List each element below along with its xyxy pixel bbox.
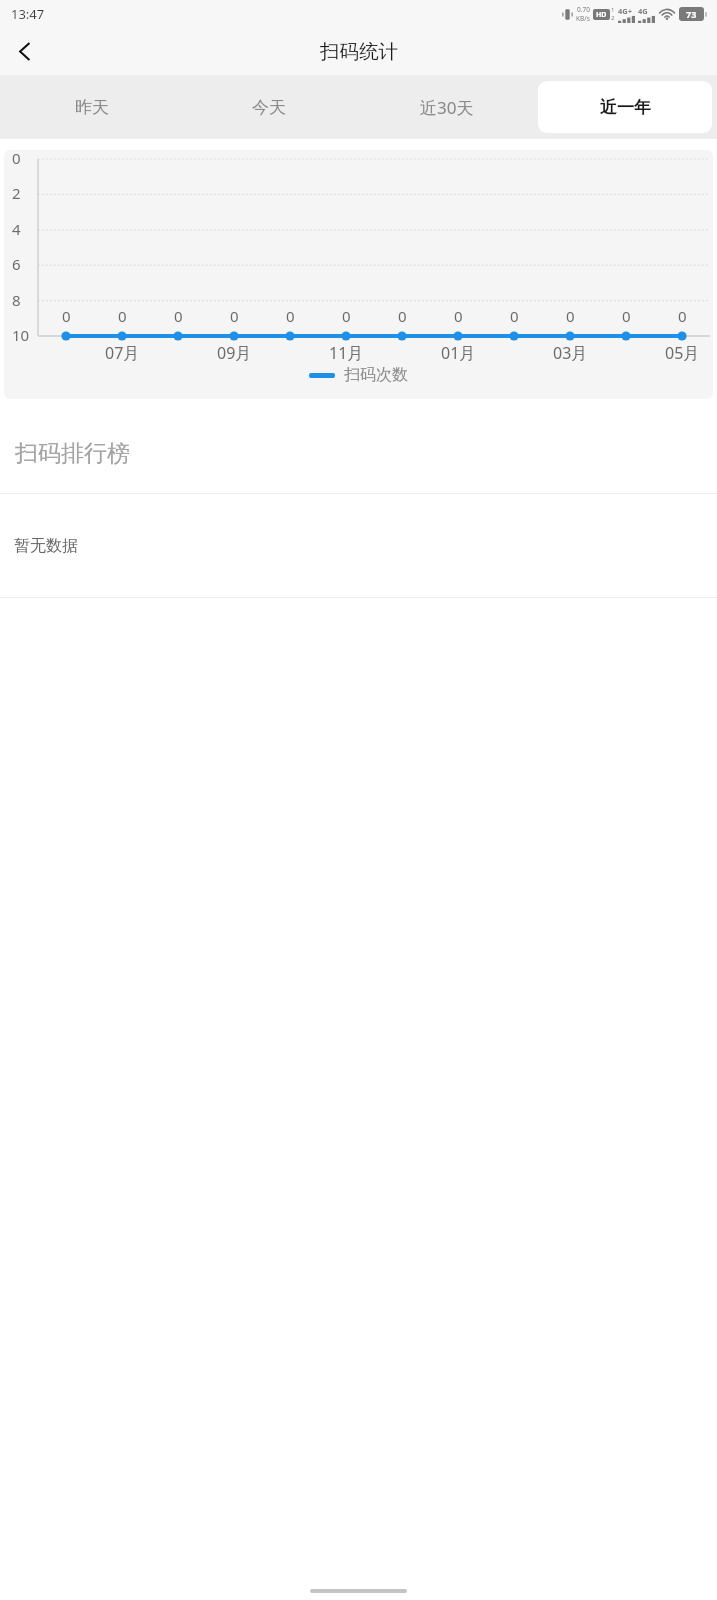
- staticText: KB/s: [576, 14, 590, 23]
- staticText: 0: [566, 306, 575, 326]
- staticText: 09月: [217, 342, 252, 364]
- staticText: 05月: [665, 342, 700, 364]
- staticText: 0: [510, 306, 519, 326]
- staticText: 13:47: [11, 5, 45, 23]
- button[interactable]: Back: [0, 27, 48, 75]
- staticText: 近一年: [600, 97, 651, 118]
- staticText: 6: [12, 254, 21, 274]
- staticText: 01月: [441, 342, 476, 364]
- staticText: 73: [686, 8, 697, 20]
- staticText: 0: [174, 306, 183, 326]
- staticText: 昨天: [75, 97, 109, 118]
- staticText: 10: [12, 325, 30, 345]
- button[interactable]: 近30天: [360, 81, 534, 133]
- staticText: 0: [62, 306, 71, 326]
- staticText: 0: [678, 306, 687, 326]
- staticText: 扫码统计: [320, 39, 398, 64]
- staticText: 07月: [105, 342, 140, 364]
- button[interactable]: 昨天: [5, 81, 178, 133]
- staticText: 4G: [638, 6, 648, 16]
- button[interactable]: 近一年: [538, 81, 712, 133]
- staticText: 0: [286, 306, 295, 326]
- staticText: 4G+: [618, 6, 633, 16]
- staticText: 4: [12, 219, 21, 239]
- staticText: 8: [12, 290, 21, 310]
- staticText: 暂无数据: [14, 536, 78, 556]
- staticText: 11月: [329, 342, 364, 364]
- staticText: 03月: [553, 342, 588, 364]
- staticText: 今天: [252, 97, 286, 118]
- staticText: 2: [611, 14, 615, 22]
- staticText: HD: [596, 10, 607, 20]
- staticText: 0: [622, 306, 631, 326]
- button[interactable]: 今天: [182, 81, 356, 133]
- staticText: 2: [12, 183, 21, 203]
- staticText: 0: [12, 150, 21, 168]
- staticText: 扫码次数: [344, 365, 408, 385]
- staticText: 近30天: [420, 96, 474, 119]
- staticText: 0: [230, 306, 239, 326]
- staticText: 0: [118, 306, 127, 326]
- staticText: 0: [398, 306, 407, 326]
- staticText: 1: [611, 6, 615, 14]
- staticText: 0.70: [577, 5, 590, 14]
- staticText: 0: [454, 306, 463, 326]
- staticText: 0: [342, 306, 351, 326]
- staticText: 扫码排行榜: [15, 439, 130, 468]
